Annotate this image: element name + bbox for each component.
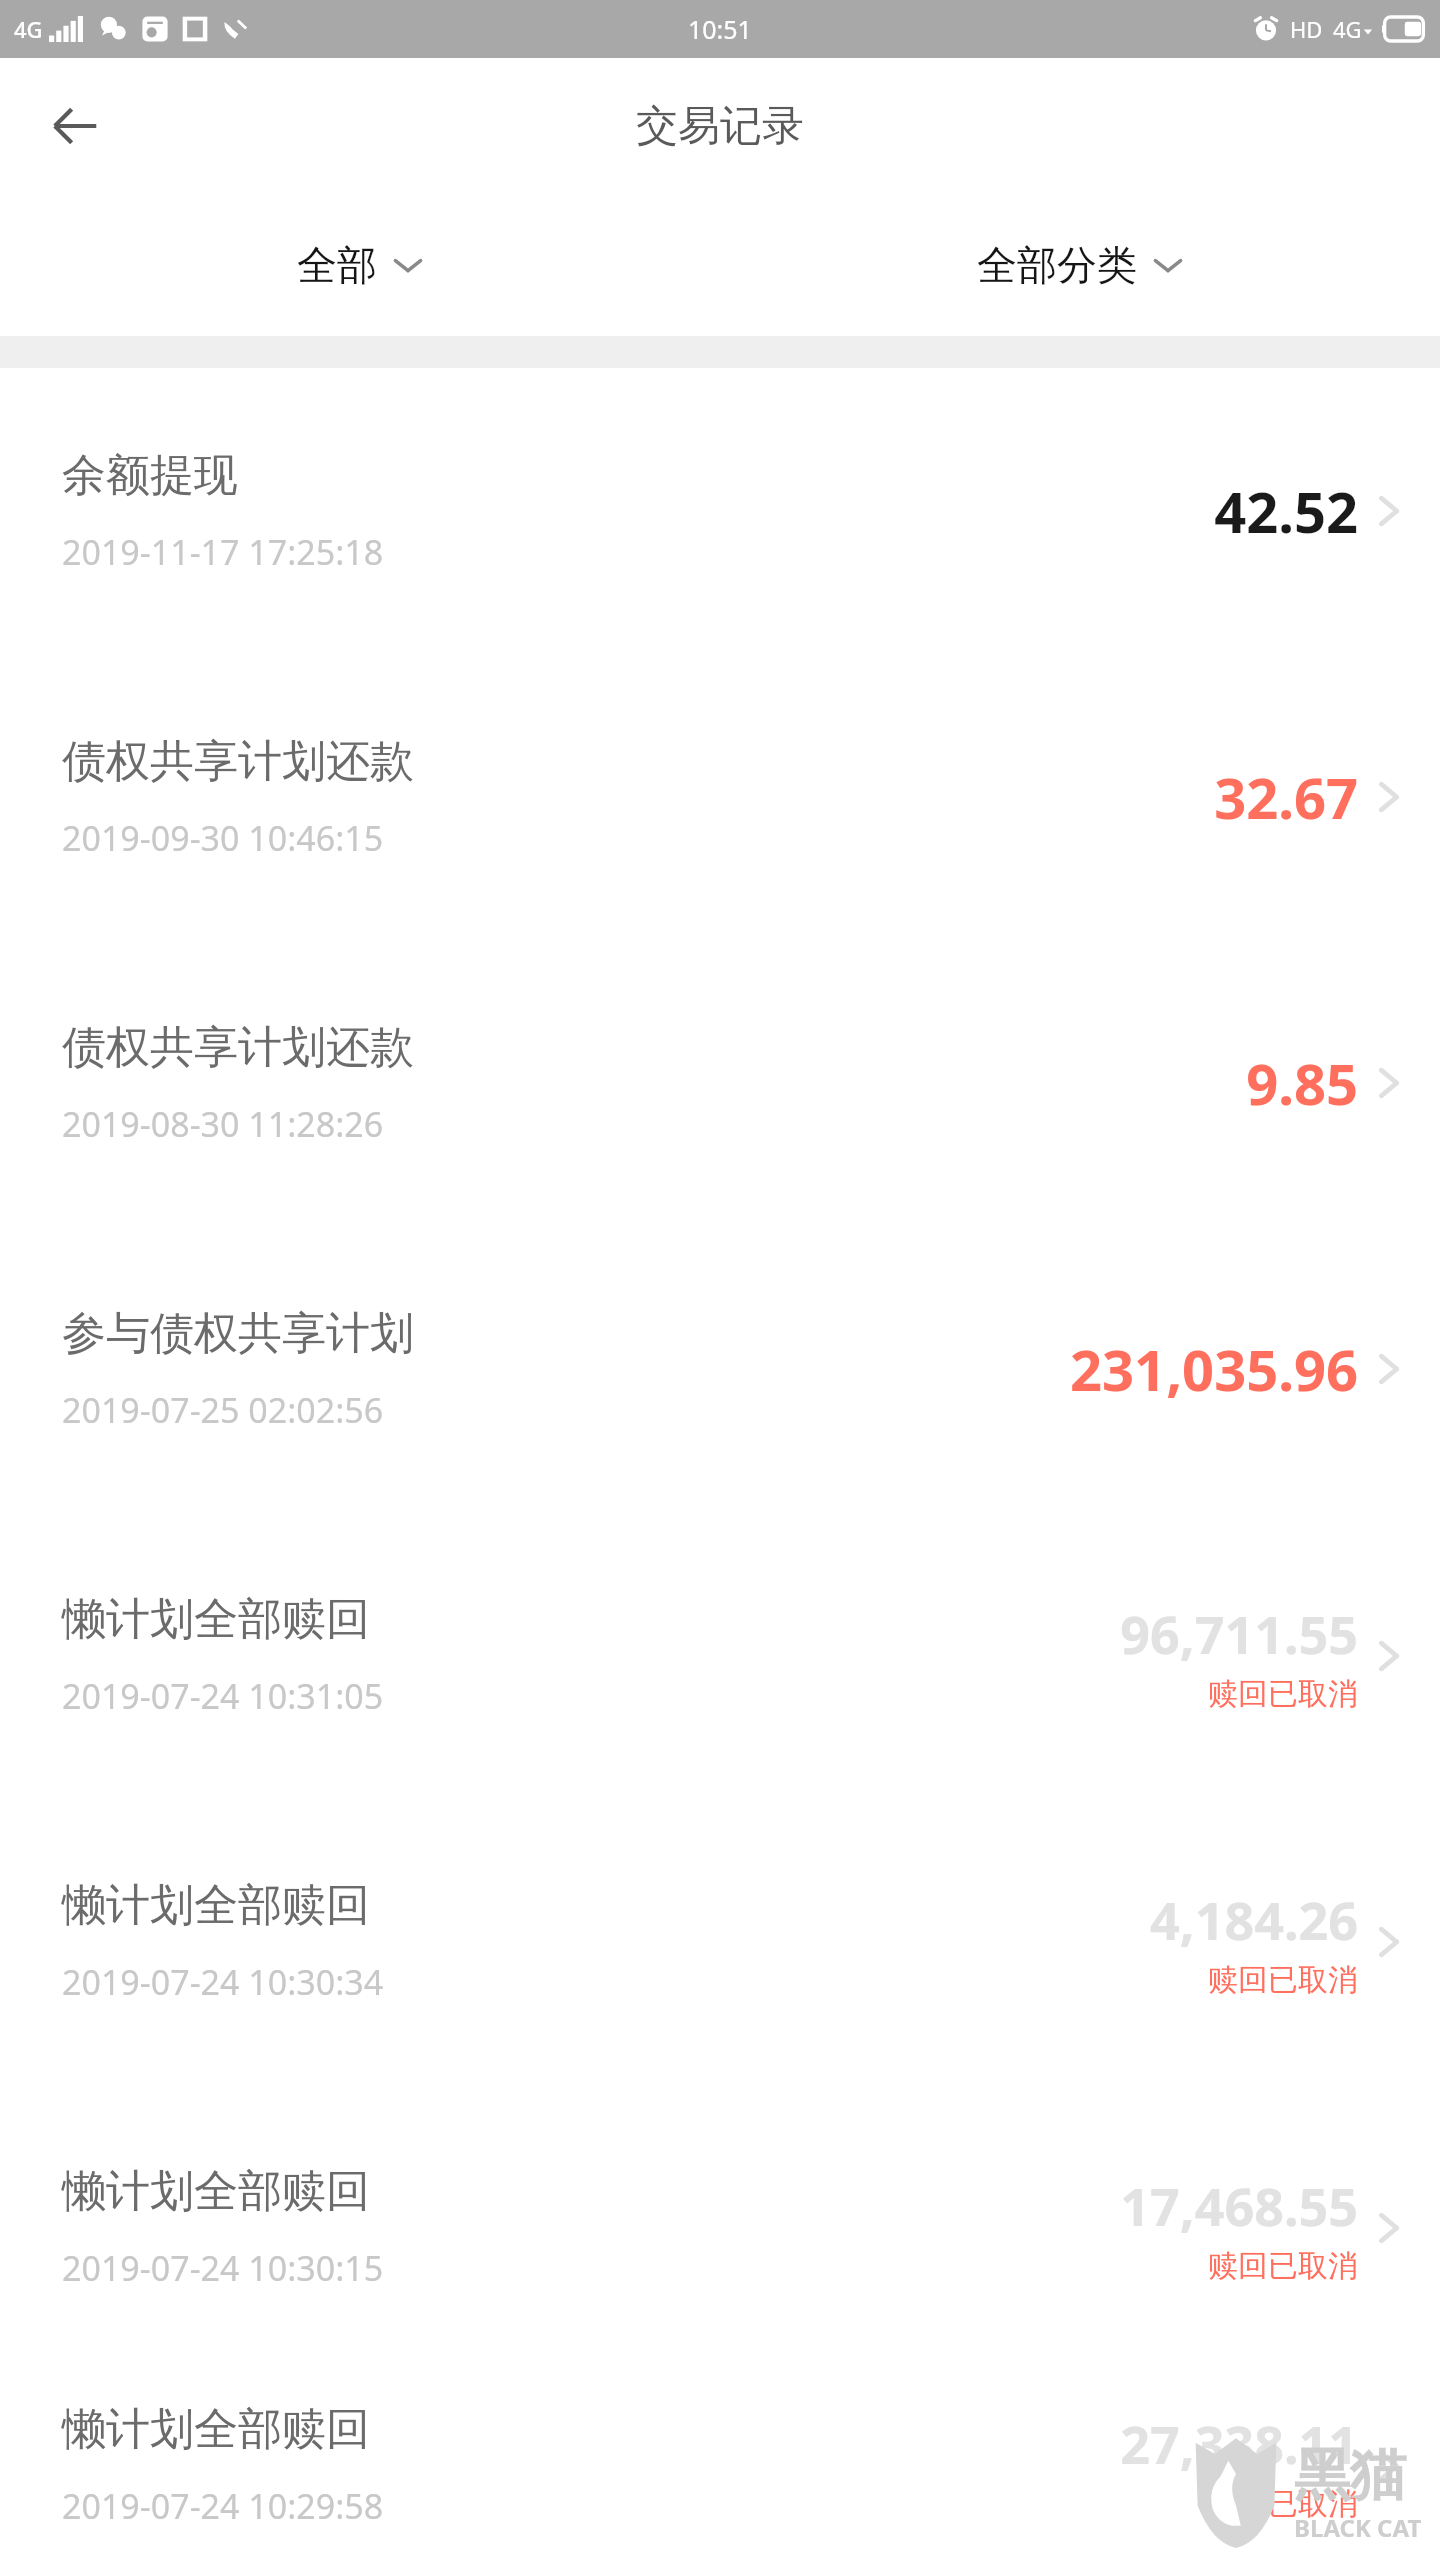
staticText: HD [1290,14,1323,44]
button[interactable]: 全部 [297,240,423,290]
staticText: 27,338.11 [1120,2408,1358,2479]
staticText: 42.52 [1214,473,1358,549]
button[interactable]: 参与债权共享计划 [0,1226,1440,1512]
button[interactable]: 债权共享计划还款 [0,654,1440,940]
staticText: 2019-07-24 10:31:05 [62,1673,384,1719]
staticText: 懒计划全部赎回 [62,1878,370,1933]
staticText: 2019-11-17 17:25:18 [62,529,384,575]
staticText: 2019-07-25 02:02:56 [62,1387,384,1433]
staticText: 懒计划全部赎回 [62,2164,370,2219]
staticText: 余额提现 [62,448,238,503]
staticText: 4G [14,14,43,44]
button[interactable]: 全部分类 [977,240,1183,290]
button[interactable]: 懒计划全部赎回 [0,2084,1440,2370]
staticText: 赎回已取消 [1208,2247,1358,2285]
staticText: 全部分类 [977,240,1137,290]
staticText: 赎回已取消 [1208,1675,1358,1713]
staticText: 赎回已取消 [1208,1961,1358,1999]
staticText: 2019-07-24 10:30:34 [62,1959,384,2005]
staticText: 2019-07-24 10:29:58 [62,2483,384,2529]
staticText: 231,035.96 [1070,1331,1358,1407]
staticText: 债权共享计划还款 [62,734,414,789]
staticText: 2019-07-24 10:30:15 [62,2245,384,2291]
staticText: 10:51 [688,12,752,46]
staticText: 32.67 [1214,759,1358,835]
staticText: 96,711.55 [1120,1598,1358,1669]
staticText: 17,468.55 [1120,2170,1358,2241]
staticText: 4,184.26 [1150,1884,1358,1955]
staticText: 交易记录 [636,100,804,153]
staticText: BLACK CAT [1294,2511,1422,2544]
button[interactable]: 余额提现 [0,368,1440,654]
button[interactable]: 懒计划全部赎回 [0,1798,1440,2084]
staticText: 全部 [297,240,377,290]
button[interactable]: Back [40,91,110,161]
staticText: 黑猫 [1294,2440,1406,2511]
staticText: 懒计划全部赎回 [62,2402,370,2457]
staticText: 9.85 [1246,1045,1358,1121]
staticText: 懒计划全部赎回 [62,1592,370,1647]
button[interactable]: 懒计划全部赎回 [0,2370,1440,2560]
staticText: 债权共享计划还款 [62,1020,414,1075]
staticText: 2019-09-30 10:46:15 [62,815,384,861]
button[interactable]: 债权共享计划还款 [0,940,1440,1226]
staticText: 参与债权共享计划 [62,1306,414,1361]
staticText: 2019-08-30 11:28:26 [62,1101,384,1147]
staticText: 赎回已取消 [1208,2485,1358,2523]
staticText: 4G [1333,14,1362,44]
button[interactable]: 懒计划全部赎回 [0,1512,1440,1798]
